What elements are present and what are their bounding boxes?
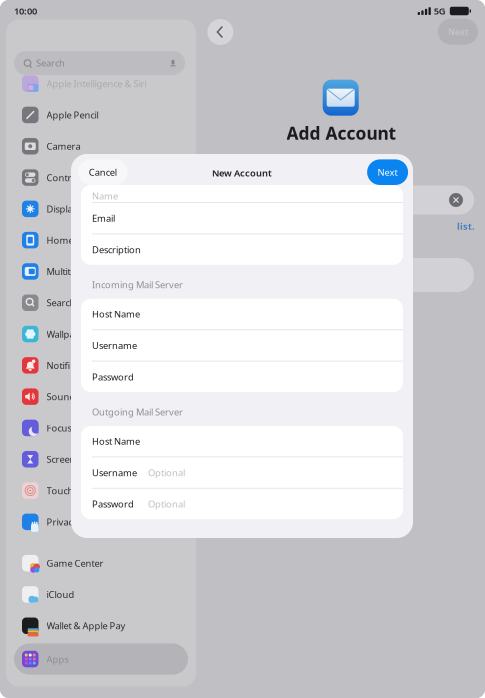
- staticText: Control Center: [46, 171, 110, 184]
- button[interactable]: Screen Time: [14, 444, 188, 475]
- staticText: Username: [92, 339, 137, 352]
- button[interactable]: Cancel: [78, 159, 128, 185]
- staticText: Next: [448, 25, 468, 38]
- staticText: Outgoing Mail Server: [92, 406, 183, 418]
- staticText: Camera: [46, 140, 80, 152]
- staticText: Optional: [148, 498, 185, 510]
- staticText: Screen Time: [46, 453, 98, 465]
- button[interactable]: Focus: [14, 412, 188, 444]
- button[interactable]: Next: [367, 159, 408, 185]
- button[interactable]: Display & Brightness: [14, 193, 188, 224]
- staticText: Notifications: [46, 359, 100, 372]
- button[interactable]: iCloud: [14, 579, 188, 610]
- button[interactable]: Camera: [14, 131, 188, 162]
- staticText: Apple Pencil: [46, 109, 98, 121]
- staticText: Incoming Mail Server: [92, 278, 183, 291]
- staticText: Host Name: [92, 435, 140, 447]
- button[interactable]: Control Center: [14, 162, 188, 193]
- staticText: Description: [92, 243, 141, 256]
- staticText: New Account: [212, 167, 272, 179]
- button[interactable]: Touch ID & Passcode: [14, 475, 188, 506]
- staticText: Home Screen & App Library: [46, 234, 166, 246]
- staticText: iCloud: [46, 588, 74, 601]
- staticText: 5G: [434, 5, 446, 17]
- button[interactable]: Sounds: [14, 381, 188, 412]
- button[interactable]: Apple Pencil: [14, 99, 188, 131]
- staticText: Host Name: [92, 308, 140, 320]
- button[interactable]: Apple Intelligence & Siri: [14, 68, 188, 99]
- button[interactable]: Multitasking & Gestures: [14, 256, 188, 287]
- staticText: Email: [92, 212, 115, 224]
- button[interactable]: Wallet & Apple Pay: [14, 610, 188, 641]
- staticText: list.: [457, 220, 475, 232]
- staticText: Password: [92, 498, 134, 510]
- staticText: Username: [92, 466, 137, 479]
- staticText: Next: [378, 166, 398, 178]
- staticText: Touch ID & Passcode: [46, 484, 136, 497]
- staticText: Sounds: [46, 390, 79, 403]
- button[interactable]: Home Screen & App Library: [14, 224, 188, 256]
- staticText: Password: [92, 371, 134, 383]
- staticText: Add Account: [286, 121, 396, 144]
- staticText: Multitasking & Gestures: [46, 265, 147, 278]
- staticText: Optional: [148, 466, 185, 479]
- button[interactable]: Privacy & Security: [14, 506, 188, 537]
- staticText: Search: [36, 57, 65, 69]
- staticText: Name: [92, 190, 118, 202]
- button[interactable]: Notifications: [14, 350, 188, 381]
- button[interactable]: Apps: [14, 643, 188, 675]
- staticText: Display & Brightness: [46, 203, 134, 215]
- button[interactable]: Next: [438, 19, 478, 45]
- staticText: Apple Intelligence & Siri: [46, 77, 146, 90]
- staticText: Wallpaper: [46, 328, 89, 340]
- staticText: 10:00: [14, 5, 37, 17]
- staticText: Game Center: [46, 557, 103, 569]
- button[interactable]: Wallpaper: [14, 318, 188, 350]
- button[interactable]: Back: [207, 19, 233, 45]
- staticText: Apps: [46, 653, 68, 665]
- staticText: Privacy & Security: [46, 516, 122, 528]
- staticText: Search: [46, 297, 75, 309]
- button[interactable]: Search: [14, 287, 188, 318]
- staticText: Wallet & Apple Pay: [46, 620, 125, 632]
- staticText: Cancel: [89, 166, 117, 178]
- staticText: Focus: [46, 422, 71, 434]
- button[interactable]: Game Center: [14, 547, 188, 579]
